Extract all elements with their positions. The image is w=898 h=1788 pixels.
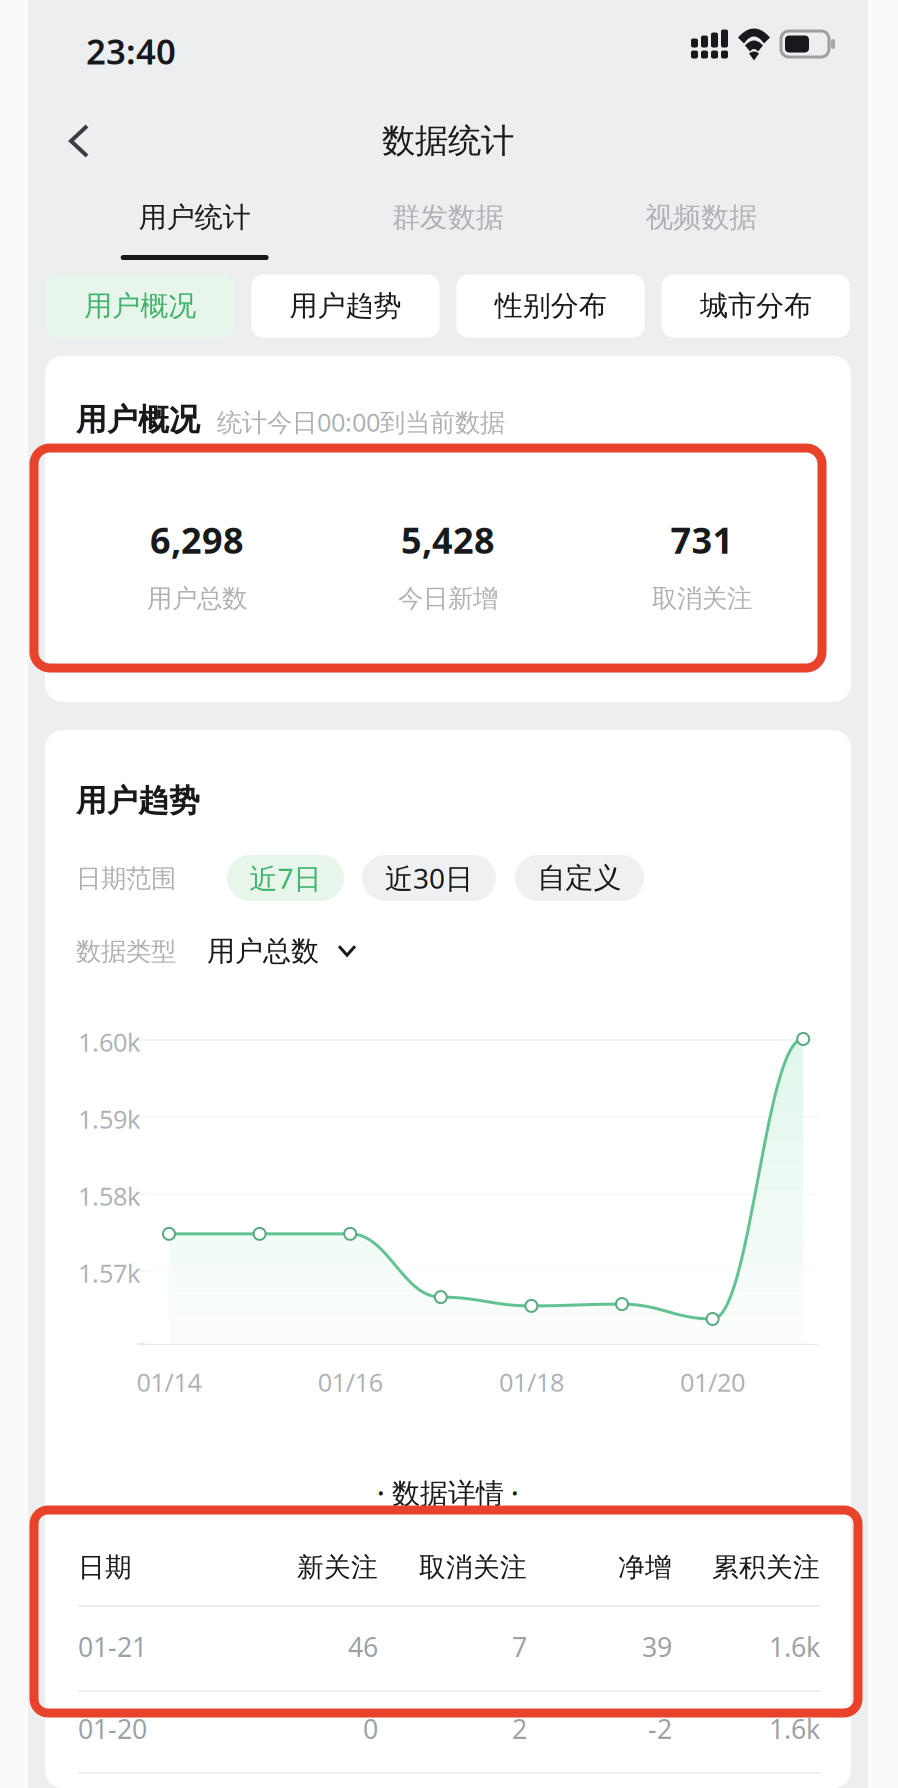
staticText: 46 (348, 1629, 378, 1664)
staticText: 取消关注 (419, 1551, 527, 1584)
staticText: 用户概况 (84, 289, 196, 323)
staticText: 01/14 (136, 1365, 201, 1399)
button[interactable]: 性别分布 (456, 274, 645, 337)
staticText: 1.59k (78, 1102, 141, 1136)
staticText: 性别分布 (495, 289, 607, 323)
button[interactable]: 近30日 (362, 855, 496, 901)
staticText: 1.57k (78, 1256, 141, 1290)
staticText: 日期 (78, 1551, 132, 1584)
staticText: 1.58k (78, 1179, 141, 1213)
staticText: 01-20 (78, 1711, 147, 1746)
staticText: 用户总数 (147, 583, 247, 614)
staticText: 01/16 (318, 1365, 383, 1399)
button[interactable]: 群发数据 (321, 182, 575, 274)
staticText: 近7日 (249, 859, 321, 897)
staticText: 净增 (618, 1551, 672, 1584)
button[interactable]: 自定义 (515, 855, 644, 901)
staticText: 1.6k (769, 1629, 820, 1664)
staticText: 累积关注 (712, 1551, 820, 1584)
staticText: 数据类型 (76, 936, 176, 967)
staticText: 数据统计 (382, 120, 514, 161)
staticText: 01-21 (78, 1629, 147, 1664)
staticText: 群发数据 (392, 200, 504, 235)
staticText: 用户统计 (139, 200, 251, 235)
staticText: 用户概况 (76, 401, 200, 439)
staticText: 日期范围 (76, 863, 176, 894)
staticText: 5,428 (401, 516, 495, 564)
staticText: 城市分布 (700, 289, 812, 323)
button[interactable]: 城市分布 (662, 274, 850, 337)
staticText: 0 (363, 1711, 378, 1746)
button[interactable]: Back (50, 104, 108, 178)
staticText: 用户总数 (207, 934, 319, 968)
staticText: · 数据详情 · (377, 1474, 519, 1511)
staticText: 视频数据 (645, 200, 757, 235)
button[interactable]: 用户趋势 (251, 274, 439, 337)
staticText: 731 (670, 516, 733, 564)
staticText: -2 (648, 1711, 672, 1746)
staticText: 统计今日00:00到当前数据 (217, 405, 505, 439)
staticText: 自定义 (537, 861, 621, 895)
staticText: 01/20 (680, 1365, 745, 1399)
staticText: 2 (512, 1711, 527, 1746)
staticText: 01/18 (499, 1365, 564, 1399)
button[interactable]: 视频数据 (575, 182, 828, 274)
staticText: 用户趋势 (289, 289, 401, 323)
staticText: 39 (642, 1629, 672, 1664)
button[interactable]: 用户概况 (46, 274, 234, 337)
button[interactable]: 近7日 (227, 855, 344, 901)
staticText: 7 (512, 1629, 527, 1664)
staticText: 新关注 (297, 1551, 378, 1584)
staticText: 23:40 (86, 28, 176, 74)
staticText: 用户趋势 (76, 782, 200, 820)
staticText: 取消关注 (652, 583, 752, 614)
button[interactable]: 用户统计 (68, 182, 321, 274)
staticText: 1.6k (769, 1711, 820, 1746)
staticText: 1.60k (78, 1025, 141, 1059)
staticText: 近30日 (385, 859, 473, 897)
button[interactable]: 用户总数 (207, 934, 357, 968)
staticText: 6,298 (150, 516, 244, 564)
staticText: 今日新增 (398, 583, 498, 614)
